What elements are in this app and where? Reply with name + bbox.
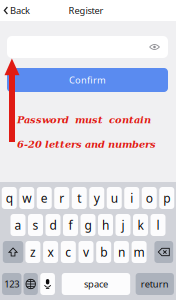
button[interactable]: l: [150, 214, 165, 236]
staticText: l: [156, 217, 159, 233]
button[interactable]: e: [37, 187, 52, 209]
staticText: o: [146, 190, 153, 206]
button[interactable]: y: [89, 187, 104, 209]
staticText: m: [134, 244, 145, 260]
staticText: g: [84, 217, 91, 233]
staticText: v: [83, 244, 89, 260]
button[interactable]: f: [63, 214, 78, 236]
button[interactable]: Next keyboard: [24, 273, 38, 295]
button[interactable]: d: [45, 214, 60, 236]
button[interactable]: s: [28, 214, 43, 236]
staticText: j: [121, 217, 124, 233]
staticText: h: [102, 217, 109, 233]
staticText: e: [41, 190, 48, 206]
button[interactable]: x: [43, 241, 58, 263]
button[interactable]: Dictation: [40, 273, 55, 295]
staticText: y: [94, 190, 100, 206]
staticText: z: [30, 244, 36, 260]
staticText: k: [137, 217, 143, 233]
button[interactable]: h: [98, 214, 113, 236]
staticText: b: [100, 244, 107, 260]
button[interactable]: t: [72, 187, 87, 209]
staticText: 6-20 letters and numbers: [17, 139, 156, 150]
button[interactable]: return: [136, 273, 174, 295]
staticText: Register: [68, 4, 103, 17]
button[interactable]: m: [132, 241, 147, 263]
staticText: r: [59, 190, 64, 206]
staticText: Password must contain: [17, 114, 151, 126]
staticText: p: [163, 190, 170, 206]
staticText: w: [22, 190, 31, 206]
staticText: f: [68, 217, 72, 233]
button[interactable]: Delete: [154, 241, 173, 263]
staticText: u: [111, 190, 118, 206]
button[interactable]: v: [78, 241, 93, 263]
button[interactable]: w: [19, 187, 34, 209]
button[interactable]: Back: [0, 0, 36, 21]
button[interactable]: n: [114, 241, 129, 263]
button[interactable]: c: [61, 241, 76, 263]
staticText: i: [130, 190, 133, 206]
staticText: Confirm: [69, 74, 106, 86]
button[interactable]: q: [2, 187, 17, 209]
button[interactable]: i: [124, 187, 139, 209]
staticText: x: [48, 244, 54, 260]
button[interactable]: o: [142, 187, 157, 209]
staticText: d: [49, 217, 56, 233]
staticText: c: [65, 244, 71, 260]
staticText: space: [84, 278, 108, 290]
staticText: s: [32, 217, 38, 233]
button[interactable]: u: [107, 187, 122, 209]
button[interactable]: b: [96, 241, 111, 263]
staticText: n: [118, 244, 125, 260]
staticText: return: [141, 278, 169, 290]
button[interactable]: Shift: [3, 241, 23, 263]
staticText: 123: [4, 278, 19, 290]
button[interactable]: r: [54, 187, 69, 209]
staticText: a: [14, 217, 21, 233]
staticText: t: [77, 190, 81, 206]
staticText: q: [6, 190, 13, 206]
button[interactable]: space: [62, 273, 130, 295]
button[interactable]: p: [159, 187, 174, 209]
button[interactable]: j: [115, 214, 130, 236]
staticText: Back: [10, 4, 30, 17]
button[interactable]: 123: [2, 273, 21, 295]
button[interactable]: a: [10, 214, 25, 236]
button[interactable]: k: [133, 214, 148, 236]
button[interactable]: g: [80, 214, 95, 236]
button[interactable]: z: [25, 241, 40, 263]
button[interactable]: Confirm: [7, 68, 168, 92]
